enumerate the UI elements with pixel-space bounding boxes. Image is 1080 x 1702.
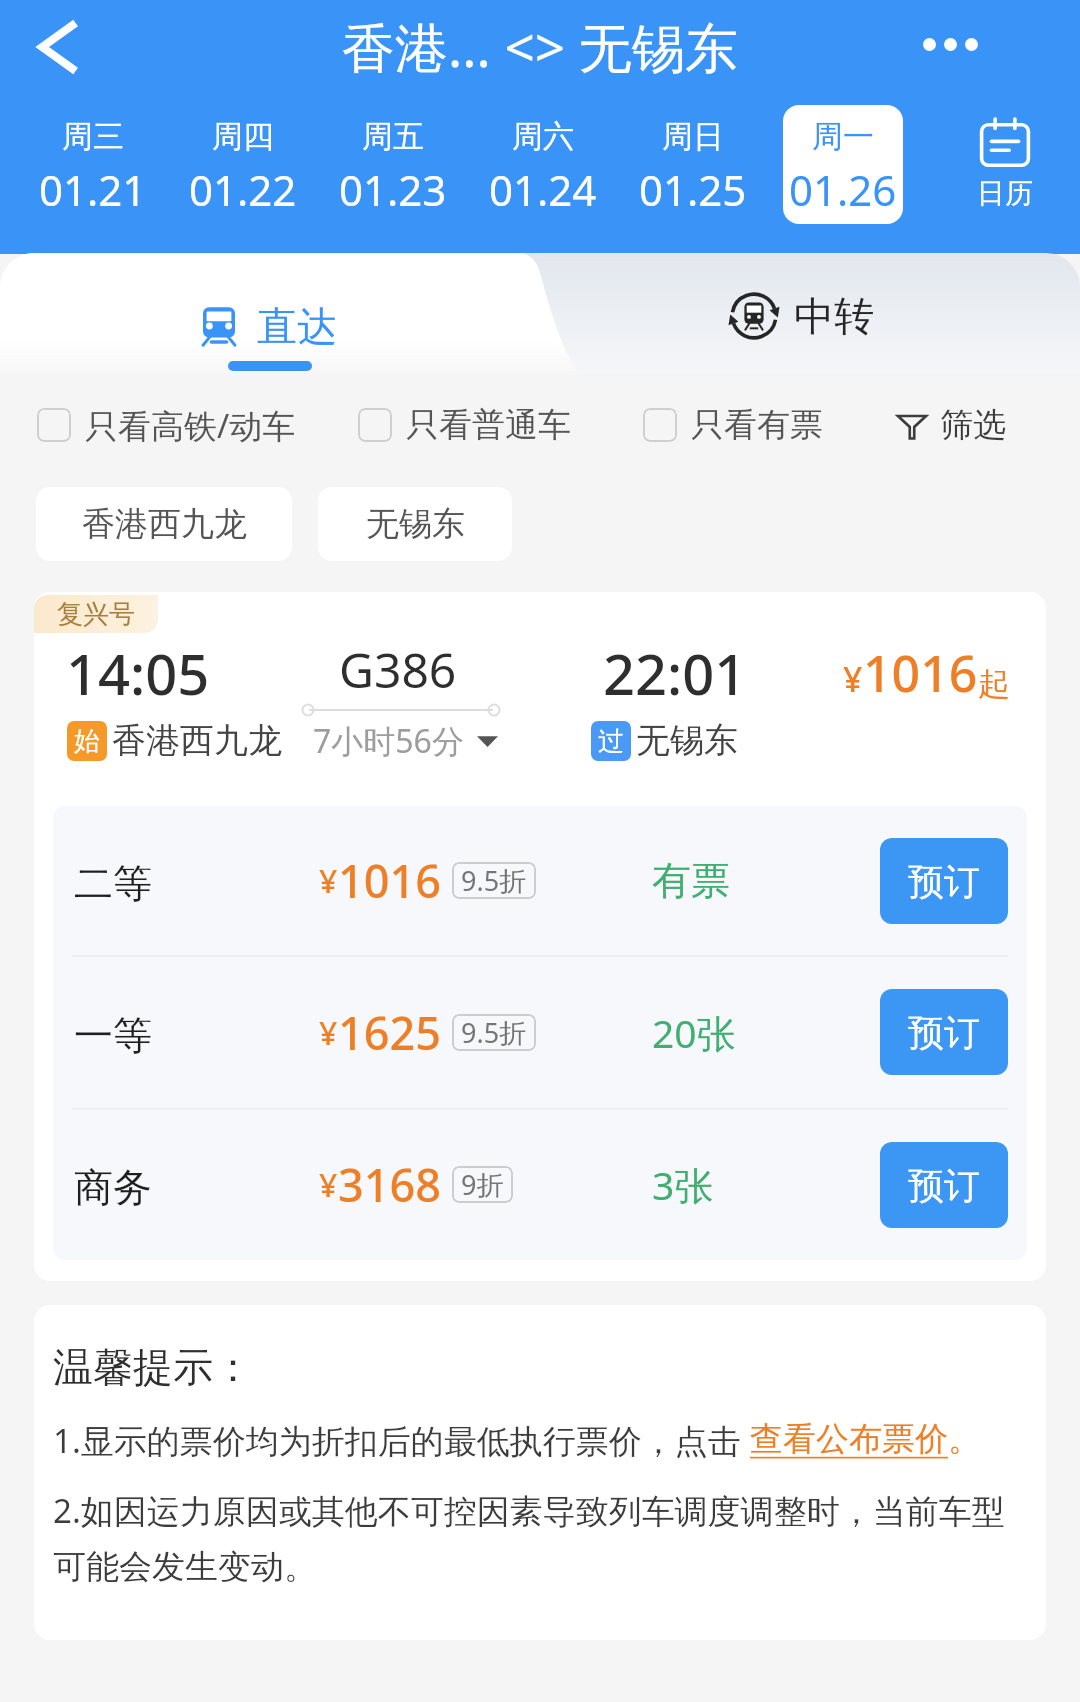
- staticText: 9折: [461, 1166, 504, 1203]
- button[interactable]: 预订: [880, 838, 1008, 924]
- staticText: 温馨提示：: [53, 1342, 253, 1392]
- button[interactable]: Back: [12, 1, 104, 93]
- staticText: 周四: [212, 117, 274, 156]
- staticText: 中转: [794, 291, 874, 341]
- staticText: 22:01: [603, 635, 747, 711]
- staticText: ¥: [319, 1011, 338, 1055]
- staticText: 2.如因运力原因或其他不可控因素导致列车调度调整时，当前车型可能会发生变动。: [53, 1488, 1015, 1588]
- button[interactable]: 只看高铁/动车: [37, 395, 296, 455]
- button[interactable]: 香港西九龙: [36, 487, 292, 561]
- staticText: 1016: [338, 850, 441, 911]
- staticText: 直达: [257, 301, 337, 351]
- staticText: 周六: [512, 117, 574, 156]
- staticText: 01.21: [39, 161, 147, 218]
- staticText: ¥: [319, 1163, 338, 1207]
- staticText: 1016: [863, 639, 978, 707]
- staticText: 7小时56分: [313, 719, 464, 763]
- button[interactable]: 周日: [621, 105, 765, 224]
- staticText: 筛选: [940, 404, 1006, 446]
- staticText: 查看公布票价: [750, 1418, 948, 1460]
- staticText: 始: [74, 725, 100, 758]
- button[interactable]: 周五: [321, 105, 465, 224]
- staticText: 1625: [338, 1002, 441, 1063]
- button[interactable]: 周一: [771, 105, 915, 224]
- staticText: 无锡东: [366, 503, 465, 545]
- button[interactable]: 二等: [53, 806, 1027, 955]
- staticText: 预订: [908, 859, 980, 904]
- button[interactable]: 周六: [471, 105, 615, 224]
- button[interactable]: 无锡东: [318, 487, 512, 561]
- staticText: 过: [598, 725, 624, 758]
- staticText: 01.25: [639, 161, 747, 218]
- staticText: 9.5折: [461, 862, 527, 899]
- staticText: 只看有票: [691, 404, 823, 446]
- staticText: 无锡东: [636, 719, 738, 762]
- staticText: 二等: [74, 859, 152, 908]
- staticText: 周一: [812, 117, 874, 156]
- staticText: 起: [978, 664, 1010, 704]
- button[interactable]: 中转: [620, 253, 1020, 373]
- staticText: 香港西九龙: [82, 503, 247, 545]
- staticText: 01.24: [489, 161, 597, 218]
- staticText: 香港西九龙: [112, 719, 282, 762]
- button[interactable]: 只看有票: [643, 395, 823, 455]
- button[interactable]: 预订: [880, 989, 1008, 1075]
- staticText: 周日: [662, 117, 724, 156]
- button[interactable]: 直达: [110, 253, 430, 373]
- button[interactable]: 一等: [53, 956, 1027, 1108]
- staticText: 只看高铁/动车: [85, 403, 296, 448]
- button[interactable]: 筛选: [896, 395, 1006, 455]
- staticText: 01.26: [789, 161, 897, 218]
- staticText: 预订: [908, 1163, 980, 1208]
- staticText: 预订: [908, 1010, 980, 1055]
- button[interactable]: 周三: [21, 105, 165, 224]
- staticText: 01.22: [189, 161, 297, 218]
- staticText: 有票: [652, 856, 730, 905]
- staticText: 。: [948, 1418, 981, 1460]
- staticText: 一等: [74, 1011, 152, 1060]
- staticText: 1.显示的票价均为折扣后的最低执行票价，点击: [53, 1418, 750, 1463]
- staticText: 3张: [652, 1158, 714, 1211]
- staticText: 商务: [74, 1163, 152, 1212]
- button[interactable]: 只看普通车: [358, 395, 571, 455]
- staticText: 周三: [62, 117, 124, 156]
- staticText: 14:05: [66, 635, 210, 711]
- staticText: 9.5折: [461, 1014, 527, 1051]
- button[interactable]: 预订: [880, 1142, 1008, 1228]
- staticText: 复兴号: [57, 598, 135, 631]
- staticText: 3168: [338, 1154, 441, 1215]
- button[interactable]: 商务: [53, 1109, 1027, 1260]
- staticText: 周五: [362, 117, 424, 156]
- staticText: 20张: [652, 1006, 736, 1059]
- button[interactable]: Calendar: [930, 105, 1080, 224]
- staticText: ¥: [319, 859, 338, 903]
- staticText: ¥: [843, 656, 863, 702]
- staticText: 只看普通车: [406, 404, 571, 446]
- staticText: 01.23: [339, 161, 447, 218]
- button[interactable]: 复兴号: [34, 592, 1046, 1281]
- button[interactable]: 周四: [171, 105, 315, 224]
- button[interactable]: More options: [898, 14, 1002, 74]
- staticText: G386: [339, 637, 457, 702]
- staticText: 香港... <> 无锡东: [342, 10, 738, 82]
- staticText: 日历: [977, 176, 1033, 211]
